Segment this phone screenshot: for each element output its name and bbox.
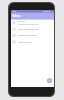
button[interactable]: Primary (11, 20, 54, 26)
button[interactable]: Promotions and offers (11, 32, 54, 38)
staticText: Social updates and news (18, 28, 39, 30)
button[interactable]: Compose (47, 78, 52, 83)
staticText: Forums, groups (18, 41, 32, 43)
staticText: Inbox (13, 14, 20, 18)
button[interactable]: Forums, groups (11, 39, 54, 45)
button[interactable]: More options (49, 14, 54, 19)
staticText: Primary (18, 20, 25, 23)
staticText: New messages from friends (18, 23, 39, 25)
button[interactable]: Social updates and news (11, 26, 54, 32)
staticText: Promotions and offers (18, 34, 37, 37)
